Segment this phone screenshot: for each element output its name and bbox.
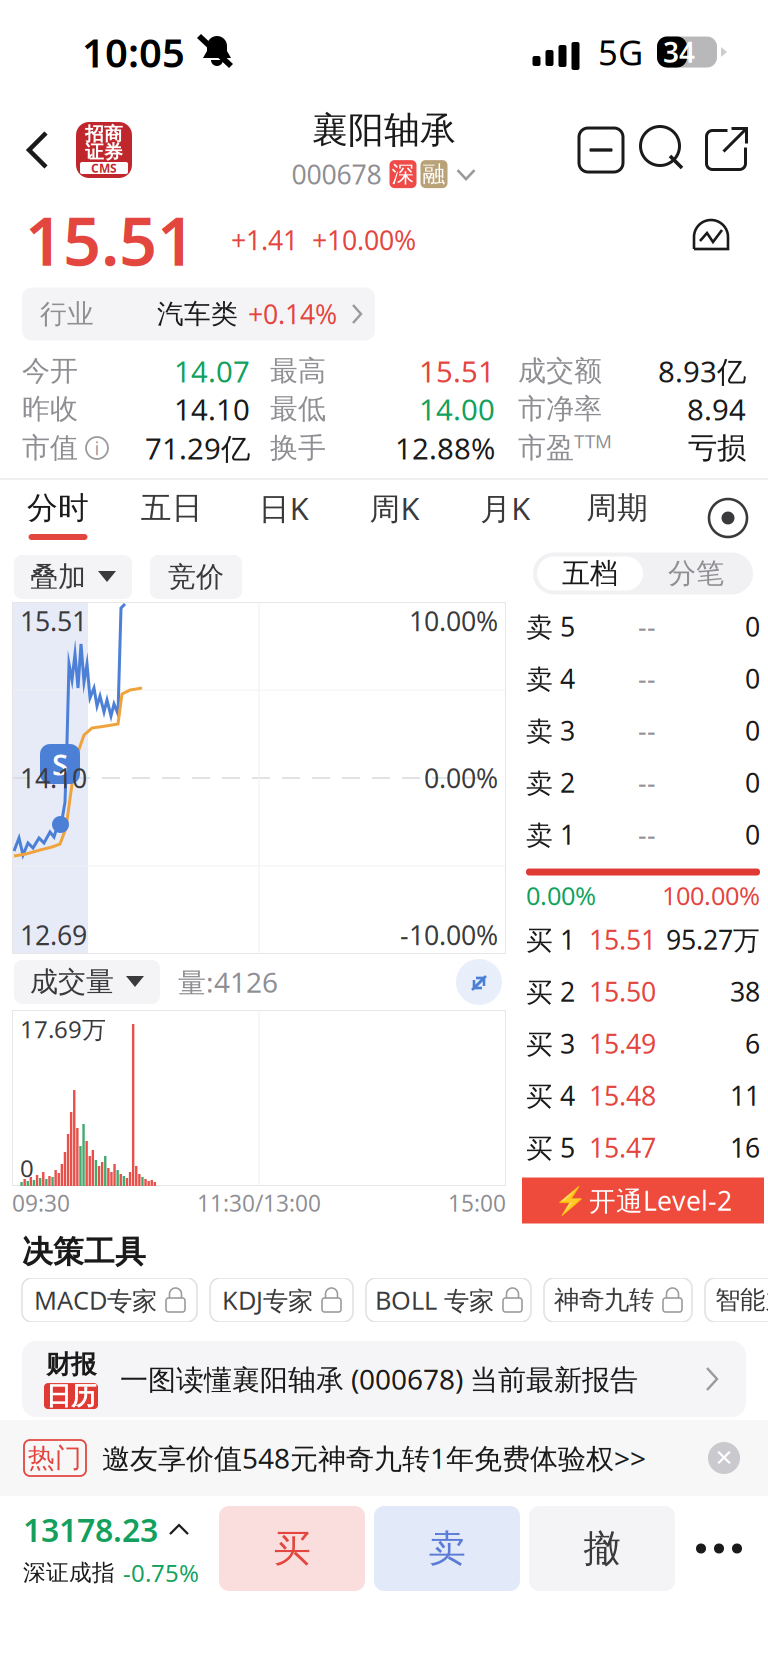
staticText: 买 4 [526, 1078, 575, 1113]
staticText: -- [638, 765, 656, 800]
staticText: 周K [369, 488, 419, 528]
staticText: 襄阳轴承 [312, 108, 456, 152]
staticText: 市值 [22, 431, 78, 465]
staticText: 14.10 [20, 760, 87, 796]
staticText: 深 [391, 160, 414, 188]
staticText: 财报 [46, 1349, 96, 1380]
staticText: 卖 1 [526, 817, 575, 852]
staticText: 市净率 [518, 392, 602, 426]
button[interactable]: KDJ专家 [210, 1278, 353, 1322]
staticText: -- [638, 661, 656, 696]
button[interactable]: 分时 [27, 488, 89, 548]
button[interactable]: 神奇九转 [544, 1278, 692, 1322]
button[interactable]: 竞价 [150, 555, 242, 599]
button[interactable]: 分笔 [643, 556, 749, 590]
staticText: -0.75% [123, 1557, 199, 1589]
button[interactable]: 日K [254, 488, 313, 548]
button[interactable]: 周期 [586, 488, 648, 548]
button[interactable]: 周K [365, 488, 424, 548]
staticText: 0 [745, 713, 760, 748]
staticText: 卖 5 [526, 609, 575, 644]
button[interactable]: Remove from watchlist [570, 119, 632, 181]
button[interactable]: ⚡ [522, 1177, 764, 1223]
staticText: 最低 [270, 392, 326, 426]
staticText: 13178.23 [23, 1508, 158, 1551]
staticText: 买 1 [526, 922, 575, 957]
staticText: 12.88% [395, 428, 495, 467]
staticText: 15:00 [448, 1188, 506, 1218]
staticText: 分时 [27, 489, 89, 527]
button[interactable]: Chart settings [700, 488, 756, 548]
staticText: 撤 [583, 1526, 620, 1571]
staticText: +1.41 [231, 222, 298, 258]
staticText: 0.00% [424, 760, 498, 796]
staticText: 卖 [428, 1526, 465, 1571]
button[interactable]: 财报 [0, 1329, 768, 1417]
staticText: -- [638, 817, 656, 852]
staticText: -- [638, 713, 656, 748]
staticText: 市盈 [518, 431, 574, 465]
staticText: 14.07 [174, 351, 250, 390]
staticText: 决策工具 [22, 1233, 146, 1271]
staticText: 15.49 [589, 1026, 656, 1061]
staticText: 日历 [46, 1380, 96, 1412]
button[interactable]: 五日 [141, 488, 203, 548]
staticText: 34 [663, 33, 695, 71]
button[interactable]: 买 [219, 1506, 365, 1591]
staticText: 14.10 [174, 389, 250, 428]
staticText: ⚡ [554, 1185, 587, 1216]
button[interactable]: Search [632, 119, 694, 181]
staticText: 8.94 [687, 389, 746, 428]
staticText: 卖 3 [526, 713, 575, 748]
staticText: 分笔 [668, 556, 724, 591]
staticText: 买 [273, 1526, 310, 1571]
staticText: 15.47 [589, 1130, 656, 1165]
button[interactable]: 撤 [529, 1506, 675, 1591]
staticText: TTM [574, 429, 612, 453]
staticText: S [52, 744, 68, 783]
staticText: 五日 [141, 489, 203, 527]
staticText: 一图读懂襄阳轴承 (000678) 当前最新报告 [120, 1360, 638, 1398]
button[interactable]: 月K [476, 488, 535, 548]
button[interactable]: Share [694, 119, 758, 181]
button[interactable]: BOLL 专家 [366, 1278, 531, 1322]
staticText: 融 [422, 160, 445, 188]
staticText: -- [638, 609, 656, 644]
staticText: 买 5 [526, 1130, 575, 1165]
staticText: 000678 [291, 156, 381, 192]
staticText: BOLL 专家 [375, 1283, 494, 1317]
staticText: 汽车类 [157, 298, 238, 330]
button[interactable]: Fullscreen chart [450, 954, 508, 1010]
button[interactable]: Back [0, 130, 76, 170]
staticText: 卖 4 [526, 661, 575, 696]
staticText: KDJ专家 [222, 1283, 313, 1317]
button[interactable]: 行业 [22, 287, 375, 340]
staticText: 邀友享价值548元神奇九转1年免费体验权>> [102, 1439, 646, 1477]
staticText: 行业 [40, 298, 94, 330]
staticText: 成交量 [30, 965, 114, 999]
button[interactable]: 叠加 [14, 555, 132, 599]
button[interactable]: 智能九转 [705, 1278, 768, 1322]
staticText: 0 [745, 817, 760, 852]
button[interactable]: Price alert [680, 210, 746, 270]
staticText: MACD专家 [34, 1283, 157, 1317]
staticText: 买 2 [526, 974, 575, 1009]
staticText: 招商 [85, 122, 123, 145]
staticText: 15.48 [589, 1078, 656, 1113]
staticText: i [94, 436, 99, 460]
button[interactable]: 卖 [374, 1506, 520, 1591]
staticText: 15.51 [25, 196, 195, 284]
staticText: 卖 2 [526, 765, 575, 800]
staticText: 亏损 [688, 430, 746, 466]
staticText: 深证成指 [23, 1559, 115, 1587]
staticText: 今开 [22, 354, 78, 388]
staticText: +10.00% [312, 222, 416, 258]
button[interactable]: 五档 [537, 556, 643, 590]
button[interactable]: 成交量 [14, 960, 160, 1004]
staticText: 6 [745, 1026, 760, 1061]
button[interactable]: Dismiss [698, 1432, 750, 1484]
button[interactable]: More [683, 1506, 755, 1591]
staticText: 12.69 [20, 917, 87, 953]
staticText: 0 [20, 1152, 34, 1184]
button[interactable]: MACD专家 [22, 1278, 197, 1322]
